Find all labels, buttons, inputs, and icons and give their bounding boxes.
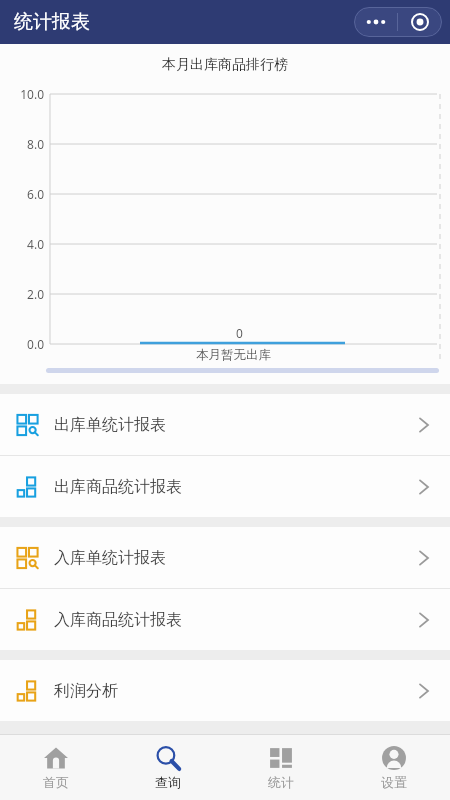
staticText: 利润分析 (54, 681, 118, 701)
button[interactable]: 利润分析 (0, 660, 450, 721)
staticText: 8.0 (10, 136, 44, 152)
button[interactable]: 入库单统计报表 (0, 527, 450, 588)
staticText: 入库商品统计报表 (54, 610, 182, 630)
staticText: 6.0 (10, 186, 44, 202)
staticText: 入库单统计报表 (54, 548, 166, 568)
staticText: 0.0 (10, 336, 44, 352)
staticText: 设置 (381, 774, 407, 790)
staticText: 本月出库商品排行榜 (162, 56, 288, 74)
staticText: 10.0 (10, 86, 44, 102)
button[interactable]: 查询 (112, 735, 224, 800)
button[interactable]: 出库单统计报表 (0, 394, 450, 455)
staticText: 出库单统计报表 (54, 415, 166, 435)
staticText: 查询 (155, 774, 181, 790)
button[interactable]: 出库商品统计报表 (0, 456, 450, 517)
staticText: 出库商品统计报表 (54, 477, 182, 497)
staticText: 首页 (43, 774, 69, 790)
staticText: 0 (236, 325, 243, 341)
staticText: 4.0 (10, 236, 44, 252)
button[interactable]: 首页 (0, 735, 112, 800)
staticText: 2.0 (10, 286, 44, 302)
staticText: 本月暂无出库 (196, 347, 271, 363)
staticText: 统计 (268, 774, 294, 790)
button[interactable]: 设置 (337, 735, 450, 800)
button[interactable]: Menu and close (354, 7, 442, 37)
button[interactable]: 入库商品统计报表 (0, 589, 450, 650)
staticText: 统计报表 (14, 10, 90, 34)
button[interactable]: 统计 (224, 735, 337, 800)
